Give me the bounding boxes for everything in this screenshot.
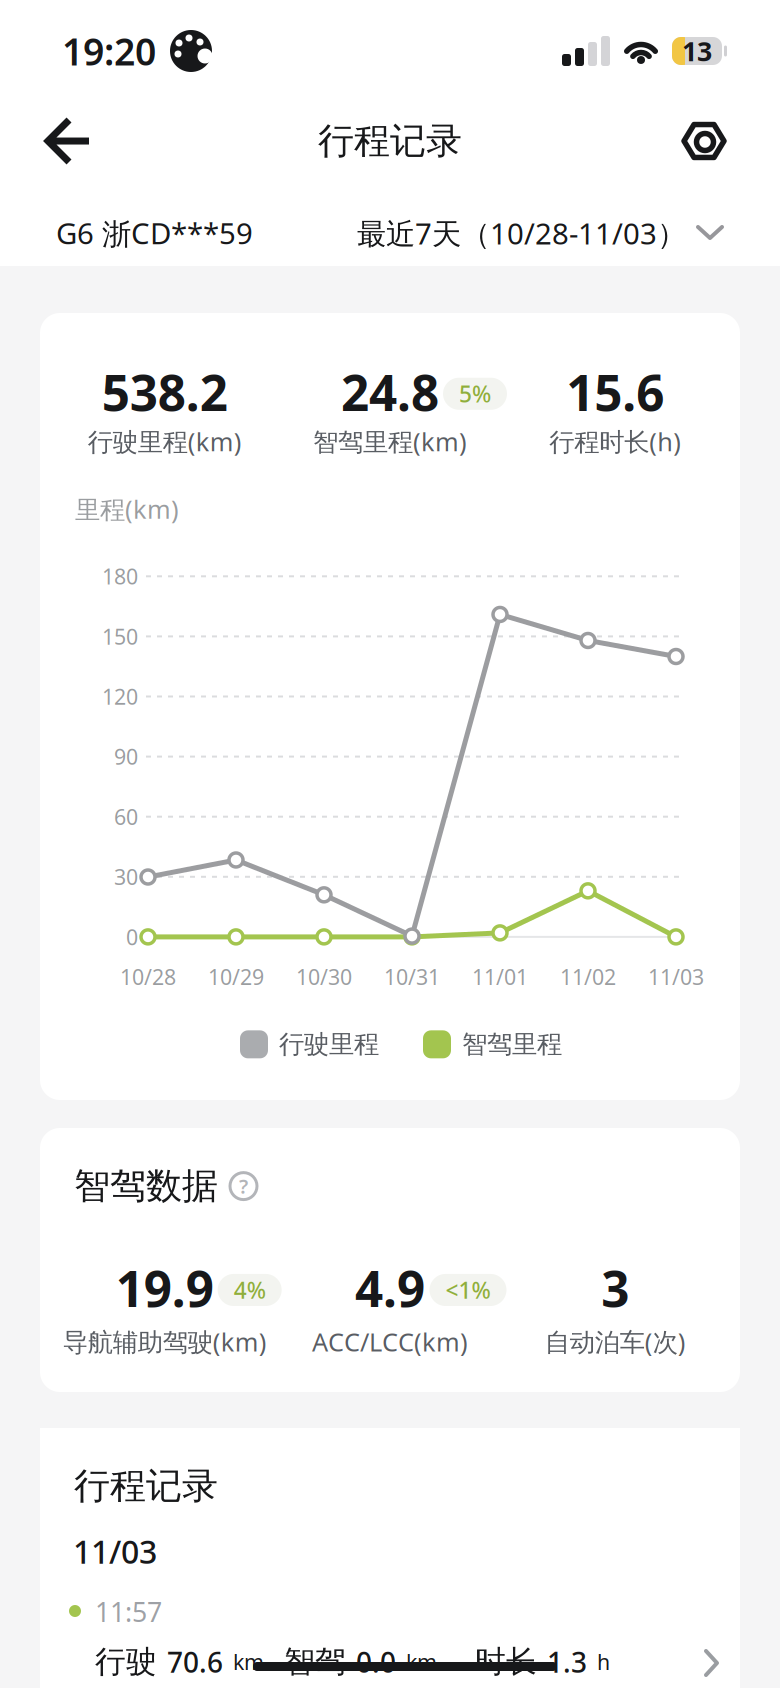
staticText: 11/02: [560, 963, 616, 991]
button[interactable]: 最近7天（10/28-11/03）: [357, 213, 724, 252]
staticText: 11/03: [648, 963, 704, 991]
staticText: ?: [239, 1173, 248, 1199]
staticText: 行程时长(h): [549, 424, 681, 458]
staticText: 最近7天（10/28-11/03）: [357, 213, 686, 252]
staticText: 里程(km): [75, 492, 179, 526]
button[interactable]: 返回: [33, 107, 103, 175]
staticText: 19.9: [116, 1255, 214, 1321]
staticText: 智驾: [284, 1643, 346, 1681]
staticText: 11/01: [472, 963, 528, 991]
staticText: h: [597, 1648, 610, 1676]
staticText: 24.8: [341, 359, 439, 424]
staticText: ACC/LCC(km): [312, 1325, 468, 1358]
staticText: G6 浙CD***59: [56, 213, 253, 252]
staticText: 自动泊车(次): [545, 1325, 686, 1358]
staticText: 3: [601, 1255, 629, 1321]
staticText: 行驶: [95, 1643, 157, 1681]
staticText: 行程记录: [74, 1464, 218, 1508]
staticText: 10/28: [120, 963, 176, 991]
staticText: 5%: [459, 379, 491, 409]
staticText: 70.6: [167, 1643, 223, 1680]
staticText: 智驾里程(km): [313, 424, 467, 458]
staticText: 行驶里程: [279, 1029, 379, 1060]
button[interactable]: 行驶: [40, 1636, 740, 1688]
staticText: <1%: [445, 1275, 490, 1305]
staticText: 行驶里程(km): [88, 424, 242, 458]
staticText: 30: [114, 863, 138, 891]
staticText: 智驾数据: [74, 1164, 218, 1208]
staticText: 11/03: [73, 1530, 157, 1572]
staticText: 60: [114, 802, 138, 831]
staticText: 10/29: [208, 963, 264, 991]
staticText: 4.9: [355, 1255, 425, 1321]
staticText: 导航辅助驾驶(km): [63, 1325, 267, 1358]
staticText: km: [406, 1648, 437, 1676]
button[interactable]: 设置: [669, 107, 739, 175]
staticText: 90: [114, 742, 138, 771]
staticText: 行程记录: [318, 119, 462, 163]
staticText: 智驾里程: [462, 1029, 562, 1060]
staticText: 538.2: [102, 359, 228, 424]
staticText: km: [233, 1648, 264, 1676]
staticText: 150: [102, 622, 138, 650]
staticText: 120: [102, 682, 138, 711]
staticText: 19:20: [62, 26, 156, 76]
staticText: 13: [682, 33, 712, 69]
staticText: 1.3: [547, 1643, 587, 1680]
staticText: 11:57: [95, 1594, 162, 1629]
staticText: 时长: [475, 1643, 537, 1681]
staticText: 15.6: [566, 359, 664, 424]
staticText: 0: [126, 923, 138, 951]
button[interactable]: 智驾数据说明: [230, 1173, 257, 1200]
staticText: 0.0: [356, 1643, 396, 1680]
staticText: 4%: [234, 1275, 266, 1305]
staticText: 10/31: [384, 963, 440, 991]
staticText: 10/30: [296, 963, 352, 991]
staticText: 180: [102, 562, 138, 590]
